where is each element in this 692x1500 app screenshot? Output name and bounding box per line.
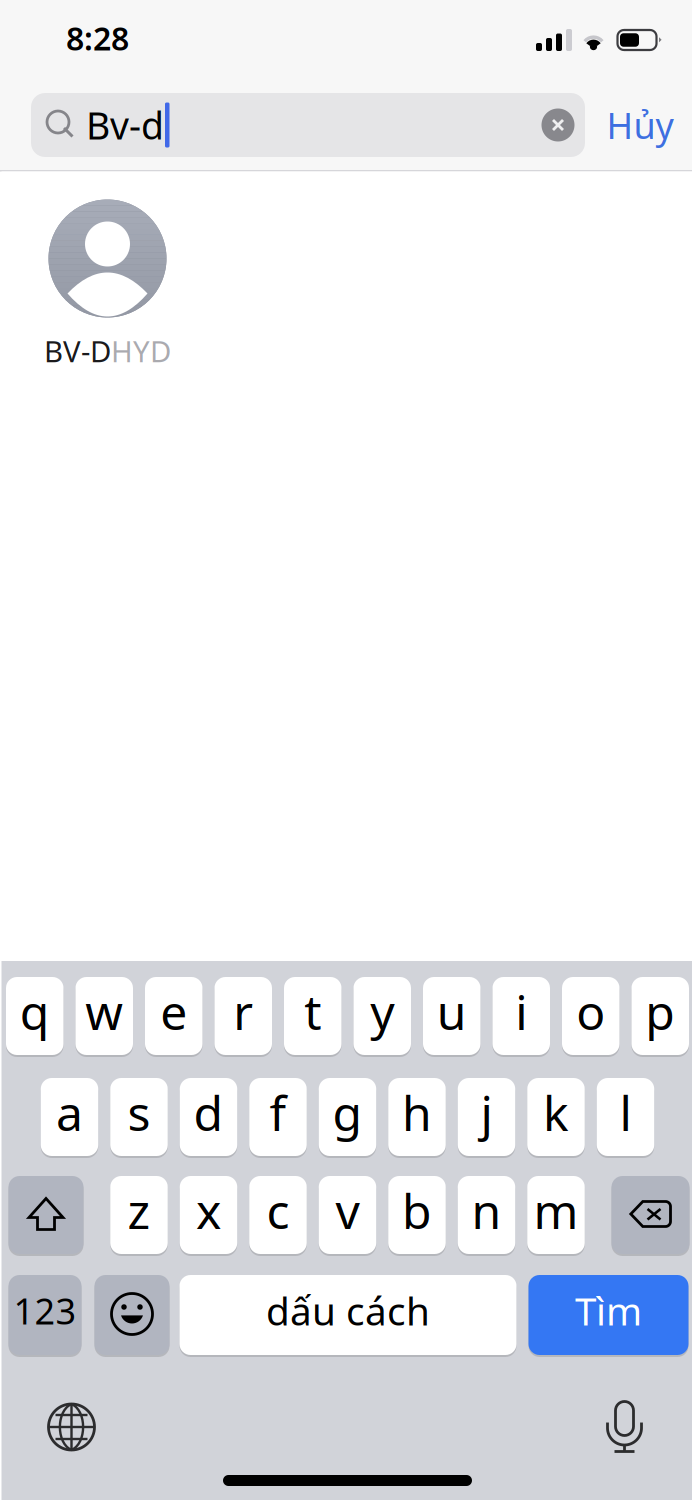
button[interactable]: v [319,1174,376,1256]
button[interactable]: z [110,1174,168,1256]
button[interactable]: n [458,1174,515,1256]
button[interactable]: g [319,1076,376,1158]
button[interactable]: u [423,975,480,1057]
button[interactable]: Shift [8,1174,83,1256]
button[interactable]: e [145,975,202,1057]
button[interactable]: dấu cách [179,1273,516,1357]
button[interactable]: f [249,1076,307,1158]
staticText: i [515,980,527,1043]
staticText: h [402,1081,432,1144]
staticText: x [196,1179,221,1242]
staticText: s [127,1081,150,1144]
button[interactable]: l [597,1076,654,1158]
staticText: r [233,980,253,1043]
staticText: f [269,1081,286,1144]
button[interactable]: t [284,975,341,1057]
staticText: Bv-d [86,100,164,150]
button[interactable]: Emoji keyboard [94,1273,169,1357]
staticText: 8:28 [66,17,129,59]
button[interactable]: j [458,1076,515,1158]
staticText: t [304,980,321,1043]
staticText: u [437,980,467,1043]
button[interactable]: s [110,1076,168,1158]
staticText: q [20,980,50,1043]
staticText: p [645,980,675,1043]
button[interactable]: y [353,975,411,1057]
staticText: v [335,1179,359,1242]
button[interactable]: Clear text [533,97,583,153]
staticText: g [332,1081,362,1144]
button[interactable]: 123 [8,1273,81,1357]
button[interactable]: r [214,975,272,1057]
button[interactable]: m [527,1174,585,1256]
button[interactable]: Dictation [586,1395,662,1459]
button[interactable]: Delete [611,1174,689,1256]
button[interactable]: a [41,1076,98,1158]
staticText: d [193,1081,223,1144]
button[interactable]: h [388,1076,446,1158]
staticText: 123 [13,1287,76,1334]
button[interactable]: w [75,975,133,1057]
staticText: w [85,980,123,1043]
staticText: y [370,980,394,1043]
button[interactable]: o [562,975,619,1057]
button[interactable]: Tìm [528,1273,688,1357]
button[interactable]: k [527,1076,585,1158]
staticText: c [266,1179,289,1242]
button[interactable]: b [388,1174,446,1256]
button[interactable]: d [180,1076,237,1158]
button[interactable]: i [492,975,550,1057]
staticText: e [160,980,187,1043]
staticText: m [533,1179,578,1242]
button[interactable]: BV-D [22,171,192,380]
staticText: HYD [111,331,171,370]
button[interactable]: x [180,1174,237,1256]
staticText: b [402,1179,432,1242]
staticText: z [127,1179,150,1242]
staticText: Tìm [575,1285,642,1336]
staticText: a [56,1081,83,1144]
staticText: Hủy [606,101,673,149]
staticText: l [619,1081,631,1144]
button[interactable]: c [249,1174,307,1256]
staticText: dấu cách [266,1285,430,1336]
staticText: n [471,1179,501,1242]
button[interactable]: Next keyboard [33,1395,109,1459]
staticText: k [543,1081,569,1144]
button[interactable]: q [6,975,63,1057]
button[interactable]: Hủy [585,93,692,157]
staticText: o [576,980,605,1043]
staticText: BV-D [44,331,111,370]
staticText: j [480,1081,492,1144]
button[interactable]: p [631,975,689,1057]
